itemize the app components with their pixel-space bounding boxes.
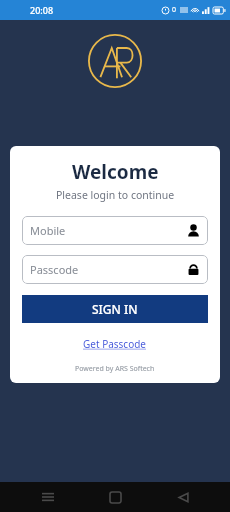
staticText: SIGN IN xyxy=(92,301,138,317)
button[interactable]: Home xyxy=(95,482,135,512)
button[interactable]: Get Passcode xyxy=(77,335,153,353)
staticText: Mobile xyxy=(30,223,187,238)
staticText: Please login to continue xyxy=(56,188,175,202)
other: Mobile number xyxy=(187,224,200,237)
button[interactable]: Back xyxy=(163,482,203,512)
staticText: Get Passcode xyxy=(83,337,147,351)
button[interactable]: SIGN IN xyxy=(22,295,208,323)
button[interactable]: Recents xyxy=(28,482,68,512)
button[interactable]: Passcode xyxy=(22,255,208,284)
staticText: 20:08 xyxy=(30,4,54,16)
button[interactable]: Mobile xyxy=(22,216,208,245)
staticText: Welcome xyxy=(72,159,159,185)
staticText: Passcode xyxy=(30,262,187,277)
other: Passcode xyxy=(187,263,200,276)
staticText: Powered by ARS Softech xyxy=(75,364,155,374)
staticText: 0 xyxy=(172,5,177,15)
